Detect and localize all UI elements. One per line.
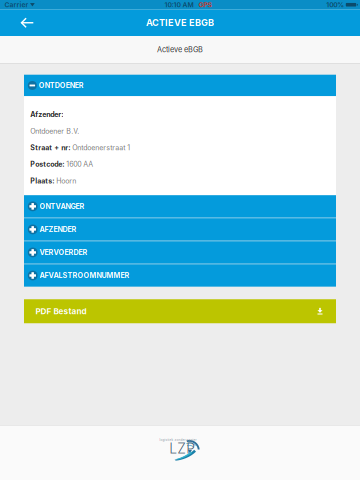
- staticText: logistiek zonder papier: [159, 438, 196, 442]
- staticText: Plaats:: [30, 177, 54, 185]
- button[interactable]: ONTDOENER: [24, 75, 336, 96]
- staticText: ACTIEVE EBGB: [146, 17, 214, 28]
- staticText: VERVOERDER: [40, 248, 88, 257]
- button[interactable]: PDF Bestand: [24, 299, 336, 323]
- staticText: Straat + nr:: [30, 143, 70, 152]
- staticText: Carrier: [4, 1, 28, 9]
- staticText: GPS: [198, 1, 211, 9]
- staticText: Hoorn: [54, 177, 76, 185]
- staticText: Postcode:: [30, 160, 64, 168]
- button[interactable]: AFVALSTROOMNUMMER: [24, 264, 336, 287]
- button[interactable]: ONTVANGER: [24, 195, 336, 217]
- staticText: AFZENDER: [40, 225, 77, 234]
- button[interactable]: AFZENDER: [24, 218, 336, 240]
- staticText: PDF Bestand: [35, 306, 86, 316]
- staticText: ONTVANGER: [40, 202, 85, 211]
- staticText: Ontdoener B.V.: [30, 127, 79, 135]
- staticText: Afzender:: [30, 110, 63, 119]
- staticText: 1600 AA: [64, 160, 93, 168]
- staticText: 100%: [326, 1, 344, 9]
- staticText: 10:10 AM: [164, 1, 193, 9]
- staticText: Actieve eBGB: [157, 45, 203, 54]
- staticText: ONTDOENER: [39, 81, 84, 90]
- button[interactable]: VERVOERDER: [24, 241, 336, 264]
- button[interactable]: Back: [0, 9, 54, 36]
- staticText: LZP: [169, 440, 195, 457]
- staticText: AFVALSTROOMNUMMER: [40, 271, 130, 280]
- staticText: Ontdoenerstraat 1: [70, 143, 130, 152]
